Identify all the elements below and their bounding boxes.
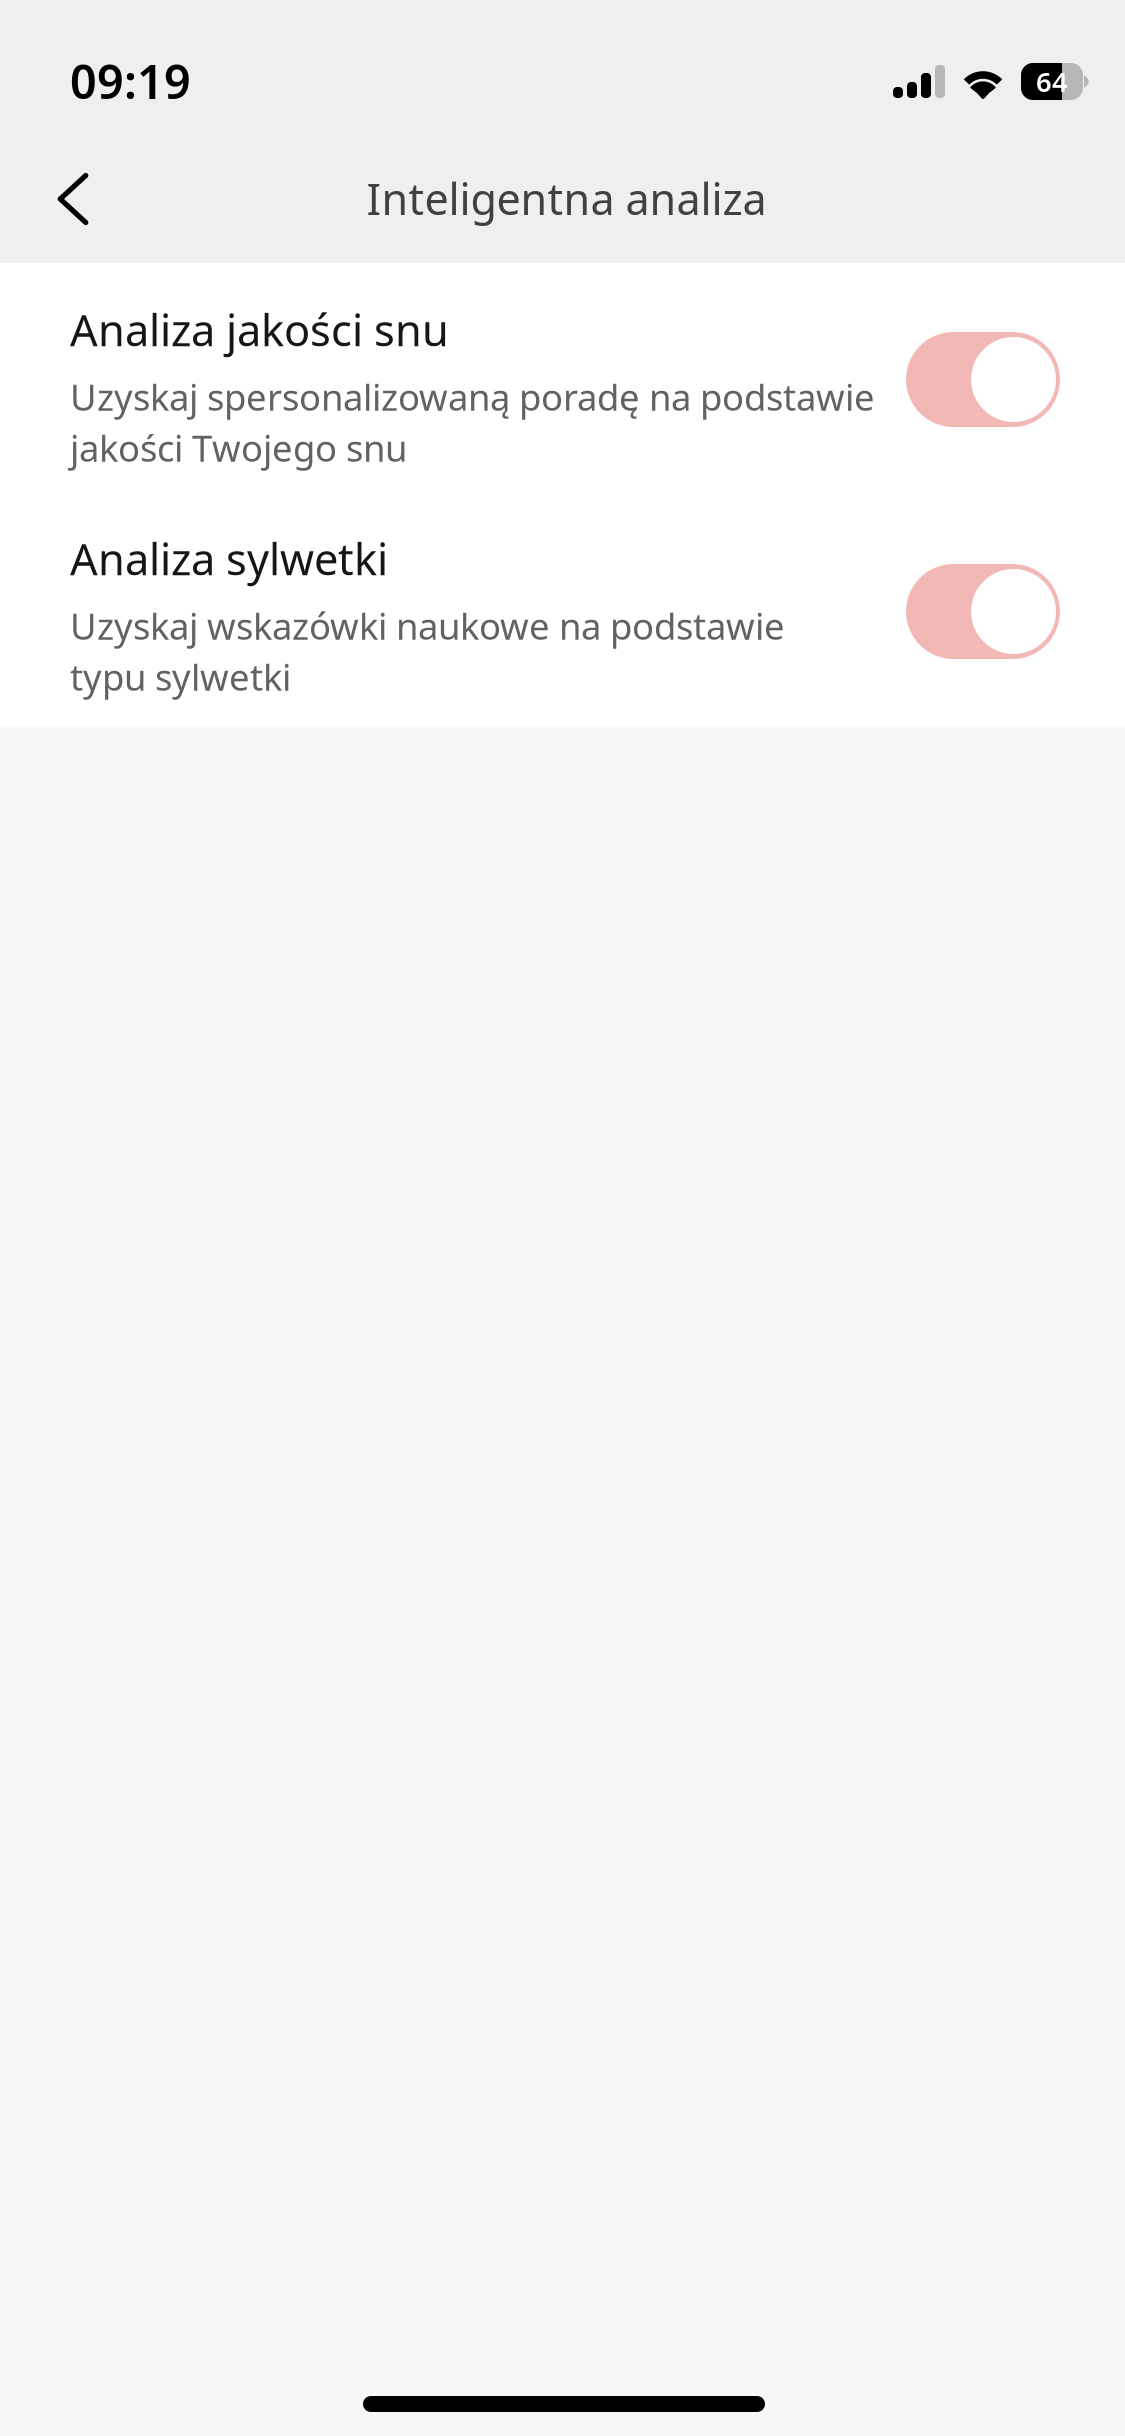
staticText: Uzyskaj wskazówki naukowe na podstawie t… xyxy=(70,600,785,702)
button[interactable]: Analiza sylwetki xyxy=(0,517,1125,726)
button[interactable]: Analiza jakości snu xyxy=(906,332,1060,427)
staticText: 09:19 xyxy=(70,49,191,113)
staticText: Analiza sylwetki xyxy=(70,529,388,588)
button[interactable]: Back xyxy=(17,143,129,255)
button[interactable]: Analiza jakości snu xyxy=(0,288,1125,517)
staticText: Analiza jakości snu xyxy=(70,300,449,359)
staticText: 64 xyxy=(1036,63,1068,100)
staticText: Inteligentna analiza xyxy=(366,169,766,228)
button[interactable]: Analiza sylwetki xyxy=(906,564,1060,659)
staticText: Uzyskaj spersonalizowaną poradę na podst… xyxy=(70,371,875,473)
